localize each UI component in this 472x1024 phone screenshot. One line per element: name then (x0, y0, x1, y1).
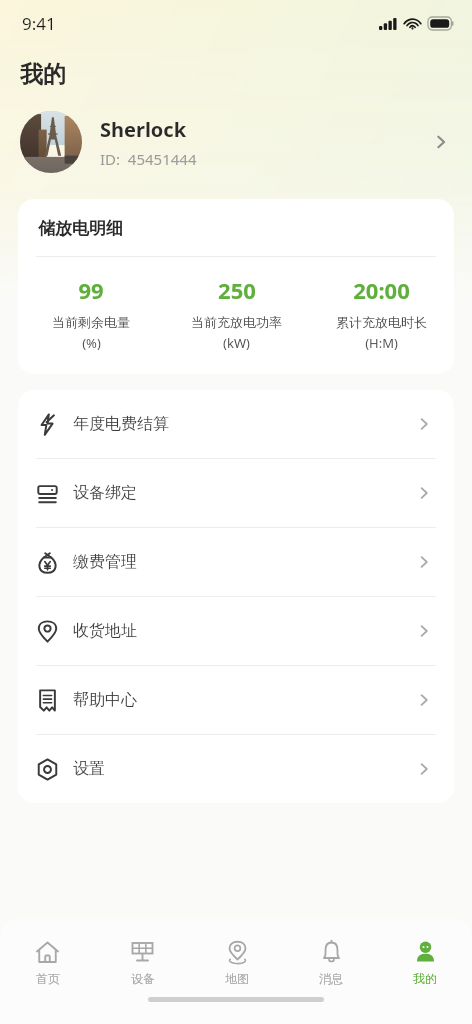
staticText: 年度电费结算 (73, 414, 414, 434)
staticText: 地图 (225, 971, 249, 986)
button[interactable]: 我的 (378, 929, 472, 997)
staticText: 我的 (20, 60, 66, 89)
button[interactable]: 年度电费结算 (18, 390, 454, 458)
staticText: 我的 (413, 971, 437, 986)
staticText: 帮助中心 (73, 690, 414, 710)
staticText: 20:00 (353, 275, 410, 305)
staticText: 消息 (319, 971, 343, 986)
staticText: 设备绑定 (73, 483, 414, 503)
staticText: 收货地址 (73, 621, 414, 641)
button[interactable]: 收货地址 (18, 597, 454, 665)
staticText: (H:M) (365, 334, 398, 352)
staticText: 9:41 (22, 12, 56, 35)
staticText: 累计充放电时长 (336, 314, 427, 330)
button[interactable]: 设备 (95, 929, 190, 997)
staticText: 250 (218, 275, 256, 305)
staticText: Sherlock (100, 116, 187, 143)
button[interactable]: 消息 (284, 929, 378, 997)
staticText: ID: 45451444 (100, 149, 197, 169)
staticText: 首页 (36, 971, 60, 986)
staticText: 99 (78, 275, 104, 305)
staticText: 设备 (131, 971, 155, 986)
staticText: 储放电明细 (38, 218, 123, 239)
button[interactable]: 设备绑定 (18, 459, 454, 527)
button[interactable]: 帮助中心 (18, 666, 454, 734)
staticText: (kW) (223, 334, 250, 352)
staticText: 当前剩余电量 (52, 314, 130, 330)
staticText: 缴费管理 (73, 552, 414, 572)
button[interactable]: 首页 (0, 929, 95, 997)
staticText: 设置 (73, 759, 414, 779)
button[interactable]: 缴费管理 (18, 528, 454, 596)
button[interactable]: Sherlock (0, 107, 472, 177)
staticText: (%) (82, 334, 101, 352)
staticText: 当前充放电功率 (191, 314, 282, 330)
button[interactable]: 设置 (18, 735, 454, 803)
button[interactable]: 地图 (190, 929, 284, 997)
